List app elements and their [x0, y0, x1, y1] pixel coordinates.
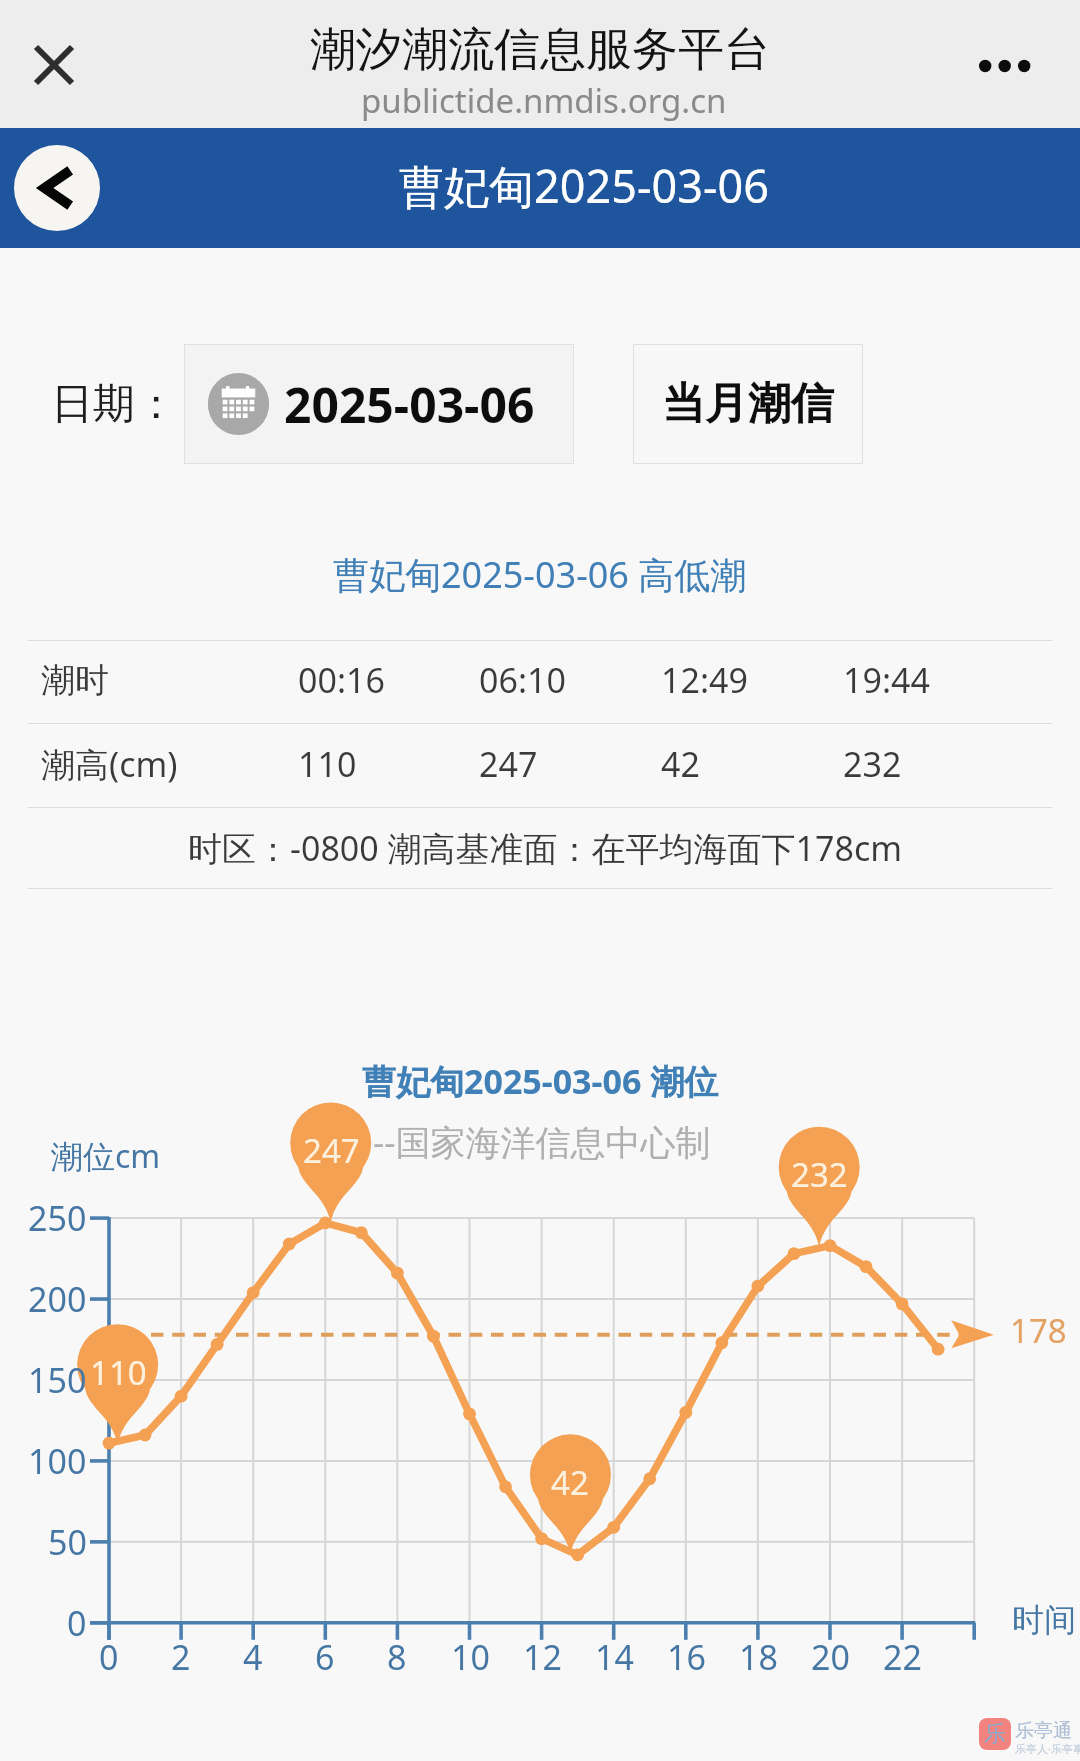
staticText: 0 — [99, 1634, 119, 1680]
staticText: 4 — [243, 1634, 263, 1680]
staticText: 潮高(cm) — [41, 741, 178, 787]
button[interactable]: 2025-03-06 — [184, 344, 574, 464]
staticText: 250 — [28, 1195, 87, 1241]
staticText: 232 — [843, 741, 902, 787]
staticText: 150 — [28, 1357, 87, 1403]
staticText: 42 — [661, 741, 700, 787]
staticText: 6 — [315, 1634, 335, 1680]
button[interactable]: Close — [18, 29, 90, 101]
staticText: 时间 — [1012, 1600, 1076, 1640]
staticText: 日期： — [51, 378, 177, 431]
staticText: 时区：-0800 潮高基准面：在平均海面下178cm — [188, 825, 903, 871]
staticText: 乐 — [984, 1720, 1006, 1748]
staticText: 乐亭通 — [1015, 1719, 1072, 1743]
staticText: 42 — [551, 1460, 589, 1505]
staticText: 200 — [28, 1276, 87, 1322]
staticText: 110 — [298, 741, 357, 787]
staticText: --国家海洋信息中心制 — [373, 1118, 711, 1166]
staticText: 曹妃甸2025-03-06 潮位 — [362, 1058, 719, 1104]
staticText: 14 — [595, 1634, 634, 1680]
staticText: 潮汐潮流信息服务平台 — [310, 21, 770, 79]
staticText: 潮时 — [41, 659, 109, 702]
staticText: 06:10 — [479, 657, 566, 703]
button[interactable]: 当月潮信 — [633, 344, 863, 464]
staticText: 2 — [171, 1634, 191, 1680]
staticText: 22 — [883, 1634, 922, 1680]
staticText: 20 — [811, 1634, 850, 1680]
staticText: 0 — [67, 1600, 87, 1646]
staticText: 00:16 — [298, 657, 385, 703]
staticText: 潮位cm — [51, 1134, 161, 1178]
staticText: 232 — [791, 1152, 848, 1197]
staticText: 12 — [523, 1634, 562, 1680]
staticText: publictide.nmdis.org.cn — [361, 78, 727, 123]
staticText: 曹妃甸2025-03-06 高低潮 — [333, 550, 747, 599]
staticText: 50 — [48, 1519, 87, 1565]
staticText: 19:44 — [843, 657, 930, 703]
staticText: 247 — [303, 1128, 360, 1173]
staticText: 16 — [667, 1634, 706, 1680]
staticText: 100 — [28, 1438, 87, 1484]
staticText: 2025-03-06 — [284, 372, 535, 437]
button[interactable]: More options — [966, 36, 1042, 96]
staticText: 247 — [479, 741, 538, 787]
staticText: 18 — [739, 1634, 778, 1680]
staticText: 8 — [387, 1634, 407, 1680]
staticText: 乐亭人·乐亭事 — [1015, 1741, 1080, 1756]
staticText: 178 — [1010, 1308, 1067, 1353]
staticText: 10 — [451, 1634, 490, 1680]
staticText: 曹妃甸2025-03-06 — [399, 155, 769, 216]
staticText: 当月潮信 — [662, 377, 834, 431]
button[interactable]: Back — [14, 145, 100, 231]
staticText: 110 — [90, 1350, 147, 1395]
staticText: 12:49 — [661, 657, 748, 703]
